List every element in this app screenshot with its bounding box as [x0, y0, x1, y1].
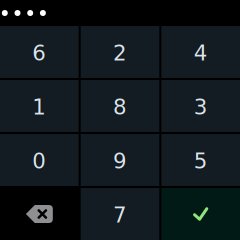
button[interactable]: Confirm [161, 188, 240, 240]
staticText: 3 [194, 95, 208, 119]
button[interactable]: Delete [0, 188, 79, 240]
button[interactable]: 9 [81, 134, 159, 186]
button[interactable]: 6 [0, 26, 79, 78]
button[interactable]: 4 [161, 26, 240, 78]
staticText: 9 [113, 149, 127, 173]
staticText: 0 [32, 149, 46, 173]
staticText: 8 [113, 95, 127, 119]
staticText: 1 [32, 95, 46, 119]
button[interactable]: 0 [0, 134, 79, 186]
staticText: 5 [194, 149, 208, 173]
button[interactable]: 1 [0, 80, 79, 132]
button[interactable]: 8 [81, 80, 159, 132]
button[interactable]: 3 [161, 80, 240, 132]
button[interactable]: 5 [161, 134, 240, 186]
staticText: 6 [32, 41, 46, 65]
button[interactable]: 2 [81, 26, 159, 78]
button[interactable]: 7 [81, 188, 159, 240]
staticText: 4 [194, 41, 208, 65]
staticText: 2 [113, 41, 127, 65]
staticText: 7 [113, 203, 127, 227]
